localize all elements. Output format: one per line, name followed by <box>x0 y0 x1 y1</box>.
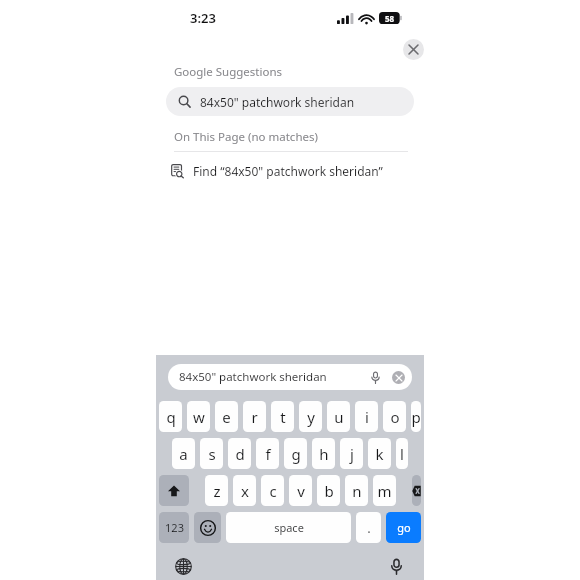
staticText: go <box>397 520 411 535</box>
staticText: 3:23 <box>190 9 216 27</box>
staticText: n <box>352 481 362 501</box>
staticText: Google Suggestions <box>174 64 283 80</box>
button[interactable]: go <box>386 512 421 543</box>
button[interactable]: b <box>317 475 340 506</box>
button[interactable]: c <box>261 475 284 506</box>
staticText: 84x50" patchwork sheridan <box>179 369 369 385</box>
staticText: q <box>166 407 176 427</box>
button[interactable]: v <box>289 475 312 506</box>
button[interactable]: s <box>200 438 223 469</box>
button[interactable]: Emoji <box>194 512 221 543</box>
button[interactable]: t <box>271 401 294 432</box>
button[interactable]: Backspace <box>412 475 421 506</box>
button[interactable]: Clear text <box>392 371 405 384</box>
button[interactable]: a <box>172 438 195 469</box>
staticText: t <box>280 407 286 427</box>
button[interactable]: Clear <box>403 39 424 60</box>
staticText: p <box>411 407 421 427</box>
button[interactable]: w <box>187 401 210 432</box>
button[interactable]: . <box>356 512 381 543</box>
button[interactable]: i <box>355 401 378 432</box>
staticText: e <box>222 407 231 427</box>
button[interactable]: j <box>340 438 363 469</box>
button[interactable]: r <box>243 401 266 432</box>
staticText: Find “84x50" patchwork sheridan” <box>193 163 383 179</box>
staticText: h <box>319 444 329 464</box>
staticText: 123 <box>165 520 184 535</box>
button[interactable]: k <box>368 438 391 469</box>
button[interactable]: Change keyboard language <box>175 558 192 575</box>
staticText: y <box>307 407 315 427</box>
button[interactable]: d <box>228 438 251 469</box>
staticText: x <box>241 481 249 501</box>
staticText: f <box>265 444 271 464</box>
staticText: On This Page (no matches) <box>174 129 318 145</box>
staticText: d <box>235 444 245 464</box>
staticText: o <box>390 407 400 427</box>
staticText: g <box>291 444 301 464</box>
button[interactable]: h <box>312 438 335 469</box>
staticText: m <box>377 481 392 501</box>
staticText: 84x50" patchwork sheridan <box>200 94 355 110</box>
staticText: a <box>179 444 188 464</box>
staticText: u <box>334 407 344 427</box>
staticText: v <box>297 481 305 501</box>
staticText: j <box>350 444 354 464</box>
staticText: l <box>400 444 404 464</box>
button[interactable]: l <box>396 438 408 469</box>
button[interactable]: Voice search <box>369 371 382 384</box>
button[interactable]: m <box>373 475 396 506</box>
button[interactable]: Dictate <box>388 558 405 575</box>
staticText: s <box>208 444 216 464</box>
button[interactable]: 123 <box>159 512 189 543</box>
staticText: . <box>367 519 371 537</box>
button[interactable]: x <box>233 475 256 506</box>
button[interactable]: 84x50" patchwork sheridan <box>166 87 414 116</box>
button[interactable]: Shift <box>159 475 189 506</box>
button[interactable]: p <box>411 401 421 432</box>
staticText: space <box>274 520 304 535</box>
button[interactable]: g <box>284 438 307 469</box>
staticText: z <box>213 481 221 501</box>
button[interactable]: 84x50" patchwork sheridan <box>168 364 412 390</box>
button[interactable]: q <box>159 401 182 432</box>
button[interactable]: f <box>256 438 279 469</box>
button[interactable]: e <box>215 401 238 432</box>
button[interactable]: Find “84x50" patchwork sheridan” <box>170 160 420 182</box>
staticText: w <box>193 407 205 427</box>
button[interactable]: y <box>299 401 322 432</box>
staticText: 58 <box>385 13 395 24</box>
staticText: r <box>251 407 258 427</box>
button[interactable]: space <box>226 512 351 543</box>
button[interactable]: o <box>383 401 406 432</box>
button[interactable]: z <box>205 475 228 506</box>
button[interactable]: u <box>327 401 350 432</box>
staticText: c <box>269 481 277 501</box>
staticText: b <box>324 481 334 501</box>
staticText: i <box>365 407 369 427</box>
staticText: k <box>375 444 384 464</box>
button[interactable]: n <box>345 475 368 506</box>
